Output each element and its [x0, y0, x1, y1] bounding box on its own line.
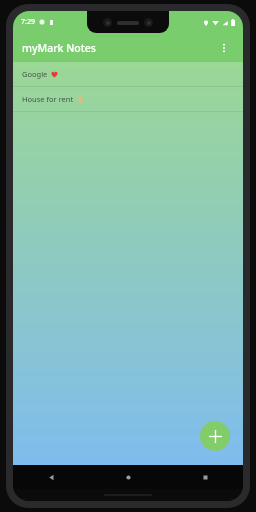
button[interactable]: Recents: [185, 465, 225, 489]
button[interactable]: More options: [214, 38, 234, 58]
button[interactable]: Google: [13, 62, 243, 86]
staticText: myMark Notes: [22, 41, 96, 55]
staticText: House for rent: [22, 94, 74, 104]
staticText: 7:29: [21, 17, 35, 27]
button[interactable]: House for rent: [13, 87, 243, 111]
button[interactable]: Add note: [200, 421, 230, 451]
staticText: Google: [22, 69, 48, 79]
button[interactable]: Back: [31, 465, 71, 489]
button[interactable]: Home: [108, 465, 148, 489]
